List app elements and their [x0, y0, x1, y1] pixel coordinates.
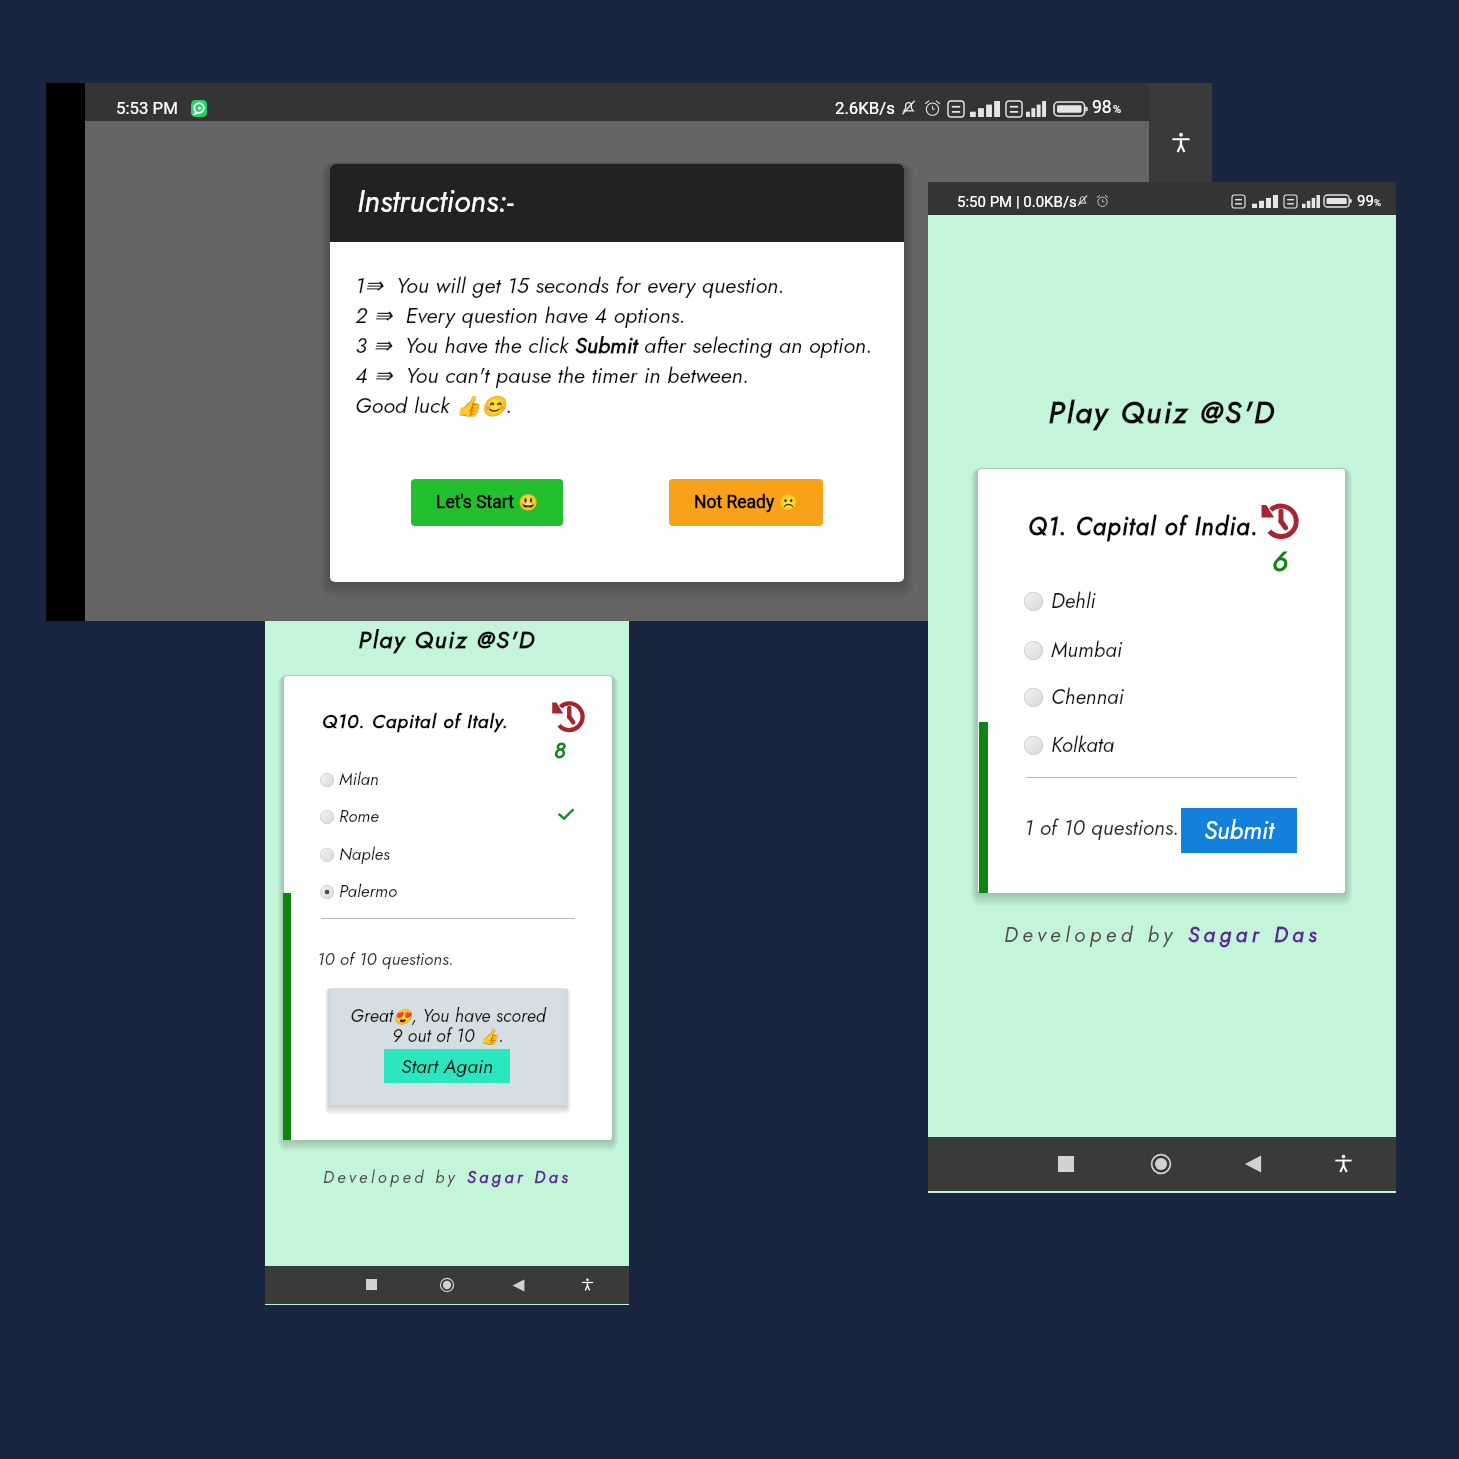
button[interactable]: Let's Start 😃	[411, 479, 563, 526]
staticText: Not Ready ☹	[694, 492, 799, 513]
staticText: 5:53 PM	[116, 98, 178, 118]
staticText: Kolkata	[1051, 730, 1115, 760]
other: Accessibility	[1171, 132, 1191, 153]
staticText: Milan	[339, 767, 379, 792]
staticText: 1 of 10 questions.	[1024, 812, 1180, 843]
button[interactable]: Rome	[320, 801, 570, 831]
staticText: Submit	[1204, 813, 1274, 849]
staticText: Great😍, You have scored 9 out of 10 👍.	[350, 1003, 546, 1049]
staticText: Play Quiz @S'D	[1048, 390, 1276, 434]
staticText: Developed by	[323, 1165, 467, 1189]
staticText: Q10. Capital of Italy.	[322, 707, 509, 735]
other: WhatsApp	[191, 100, 207, 117]
button[interactable]: Submit	[1181, 808, 1297, 853]
button[interactable]: Mumbai	[1024, 631, 1304, 669]
button[interactable]: Milan	[320, 764, 570, 794]
staticText: Instructions:-	[357, 179, 514, 223]
staticText: 1⇛ You will get 15 seconds for every que…	[355, 269, 873, 421]
staticText: 10 of 10 questions.	[317, 946, 454, 971]
staticText: Sagar Das	[1188, 920, 1321, 950]
staticText: Sagar Das	[467, 1165, 572, 1189]
staticText: Q1. Capital of India.	[1028, 509, 1259, 544]
staticText: 98	[1092, 97, 1112, 118]
button[interactable]: Palermo	[320, 876, 570, 906]
button[interactable]: Start Again	[384, 1049, 510, 1083]
staticText: Mumbai	[1051, 635, 1122, 665]
staticText: Developed by	[1004, 920, 1188, 950]
staticText: Palermo	[339, 879, 398, 904]
staticText: 8	[554, 734, 566, 766]
staticText: Start Again	[401, 1052, 493, 1080]
button[interactable]: Not Ready ☹	[669, 479, 823, 526]
staticText: Let's Start 😃	[436, 492, 539, 513]
other: Accessibility	[1334, 1154, 1353, 1173]
staticText: Dehli	[1051, 586, 1096, 616]
staticText: Chennai	[1051, 682, 1124, 712]
staticText: %	[1374, 197, 1381, 208]
button[interactable]: Dehli	[1024, 582, 1304, 620]
staticText: 99	[1357, 192, 1374, 210]
button[interactable]: Kolkata	[1024, 726, 1304, 764]
button[interactable]: Naples	[320, 839, 570, 869]
staticText: Naples	[339, 842, 390, 867]
staticText: Rome	[339, 804, 379, 829]
staticText: Play Quiz @S'D	[358, 623, 536, 657]
other: Accessibility	[581, 1278, 594, 1291]
staticText: 5:50 PM | 0.0KB/s	[957, 193, 1077, 211]
staticText: 6	[1272, 541, 1288, 581]
staticText: %	[1113, 103, 1122, 116]
button[interactable]: Chennai	[1024, 678, 1304, 716]
staticText: 2.6KB/s	[835, 98, 895, 118]
